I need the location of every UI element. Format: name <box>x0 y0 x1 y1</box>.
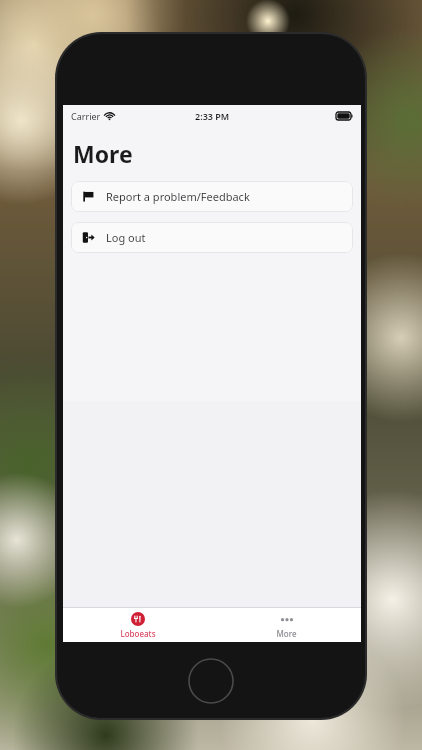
staticText: 2:33 PM <box>195 110 230 122</box>
staticText: More <box>73 138 133 169</box>
staticText: Loboeats <box>120 628 156 639</box>
other: Loboeats <box>131 612 145 626</box>
staticText: Log out <box>106 230 146 245</box>
button[interactable]: Log out <box>71 222 353 253</box>
staticText: Carrier <box>71 110 101 122</box>
other: More <box>279 612 295 626</box>
staticText: Report a problem/Feedback <box>106 189 250 204</box>
button[interactable]: Report a problem/Feedback <box>71 181 353 212</box>
button[interactable]: Loboeats <box>63 608 212 642</box>
staticText: More <box>276 628 297 639</box>
button[interactable]: More <box>212 608 361 642</box>
